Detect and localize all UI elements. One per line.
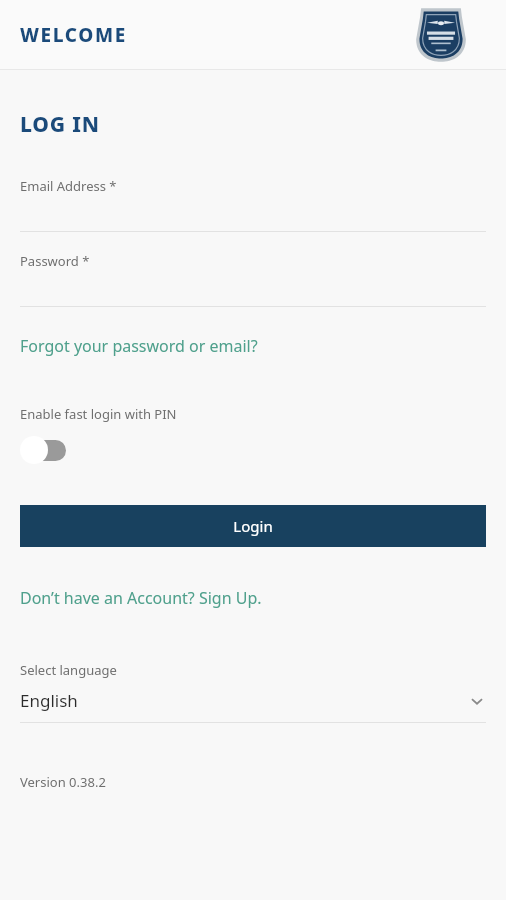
staticText: WELCOME <box>20 22 127 48</box>
button[interactable]: Forgot your password or email? <box>20 331 486 361</box>
staticText: Login <box>233 516 273 536</box>
staticText: Forgot your password or email? <box>20 335 258 357</box>
other: Logo <box>414 6 468 64</box>
staticText: Enable fast login with PIN <box>20 405 177 423</box>
button[interactable]: Login <box>20 505 486 547</box>
staticText: English <box>20 689 468 712</box>
button[interactable]: Enable fast login with PIN <box>20 435 74 465</box>
staticText: LOG IN <box>20 110 100 139</box>
button[interactable]: English <box>20 689 486 723</box>
button[interactable]: Password * <box>20 252 486 307</box>
staticText: Email Address * <box>20 177 117 195</box>
staticText: Version 0.38.2 <box>20 773 106 791</box>
staticText: Don’t have an Account? Sign Up. <box>20 587 262 609</box>
staticText: Select language <box>20 661 117 679</box>
staticText: Password * <box>20 252 90 270</box>
button[interactable]: Email Address * <box>20 177 486 232</box>
button[interactable]: Don’t have an Account? Sign Up. <box>20 583 486 613</box>
